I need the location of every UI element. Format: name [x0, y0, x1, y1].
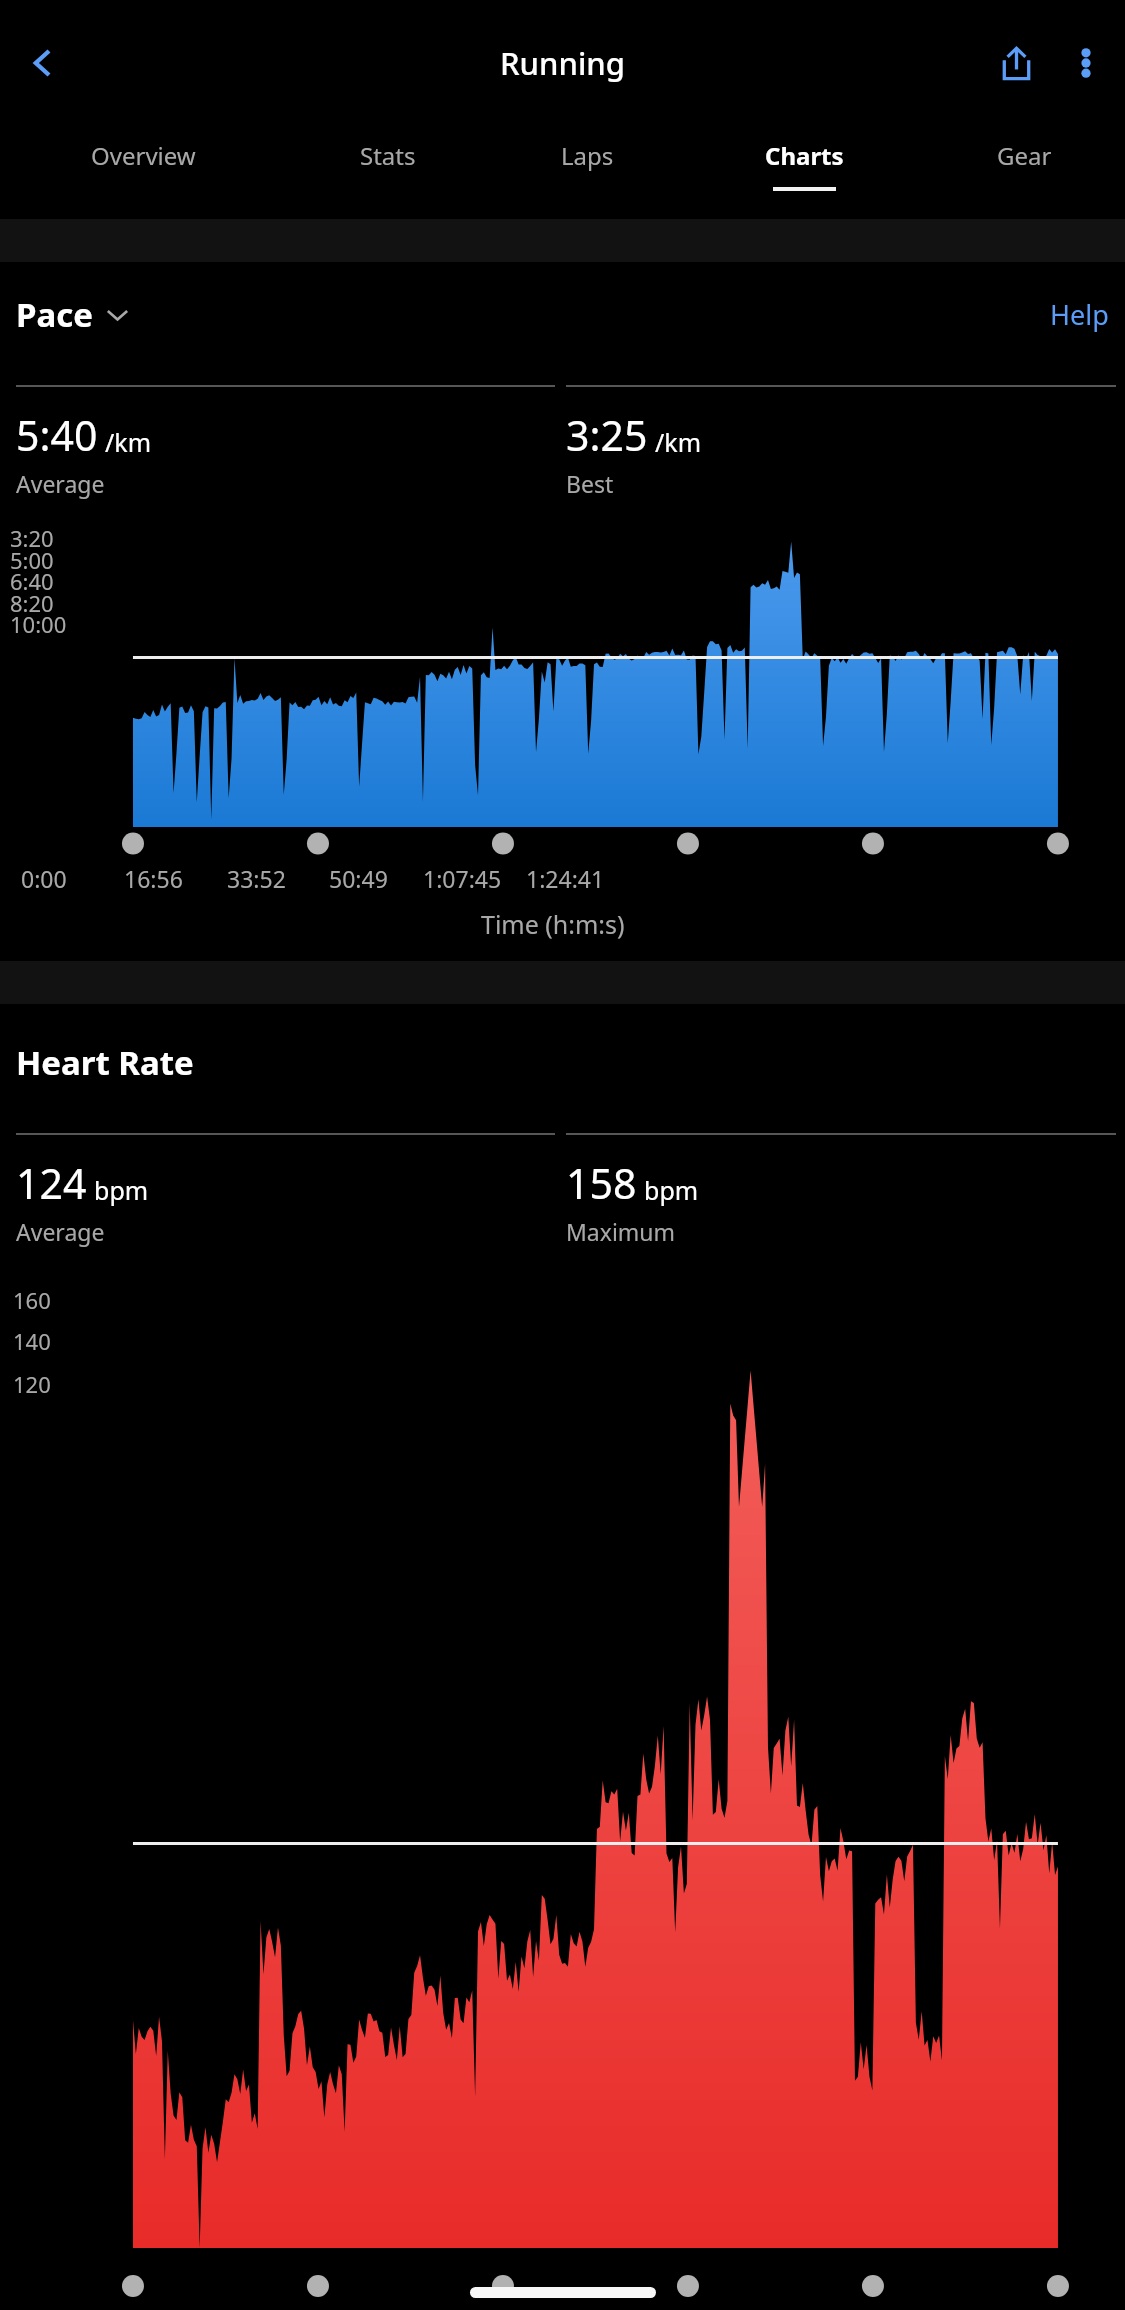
staticText: 120	[13, 1369, 51, 1399]
staticText: Average	[16, 1216, 105, 1247]
staticText: 160	[13, 1285, 51, 1315]
button[interactable]: Pace	[16, 292, 129, 337]
button[interactable]: Charts	[686, 126, 923, 219]
staticText: 1:24:41	[526, 863, 605, 894]
staticText: Overview	[91, 139, 196, 172]
staticText: Heart Rate	[16, 1040, 194, 1085]
staticText: 5:00	[10, 545, 54, 575]
staticText: 33:52	[227, 863, 286, 894]
staticText: 158	[566, 1155, 637, 1211]
staticText: 6:40	[10, 566, 54, 596]
staticText: 1:07:45	[423, 863, 502, 894]
staticText: 0:00	[21, 863, 67, 894]
button[interactable]: Overview	[0, 126, 287, 219]
staticText: 10:00	[10, 609, 67, 639]
staticText: Maximum	[566, 1216, 676, 1247]
staticText: Running	[500, 42, 625, 84]
staticText: bpm	[644, 1173, 699, 1207]
staticText: Charts	[765, 139, 844, 172]
button[interactable]: Share	[981, 28, 1051, 98]
staticText: Stats	[360, 139, 416, 172]
staticText: bpm	[94, 1173, 149, 1207]
staticText: Help	[1050, 296, 1109, 333]
staticText: /km	[105, 425, 152, 459]
staticText: Average	[16, 468, 105, 499]
staticText: Pace	[16, 292, 93, 337]
button[interactable]: Gear	[923, 126, 1125, 219]
staticText: Laps	[561, 139, 614, 172]
staticText: 5:40	[16, 407, 98, 463]
staticText: Gear	[997, 139, 1052, 172]
button[interactable]: Laps	[489, 126, 686, 219]
staticText: 50:49	[329, 863, 388, 894]
staticText: Best	[566, 468, 614, 499]
button[interactable]: Stats	[287, 126, 489, 219]
staticText: 16:56	[124, 863, 183, 894]
staticText: 124	[16, 1155, 87, 1211]
staticText: 3:20	[10, 523, 54, 553]
staticText: 140	[13, 1326, 51, 1356]
staticText: 3:25	[566, 407, 648, 463]
staticText: 8:20	[10, 588, 54, 618]
button[interactable]: Help	[1050, 296, 1109, 333]
button[interactable]: More options	[1051, 28, 1121, 98]
button[interactable]: Back	[12, 32, 74, 94]
staticText: Time (h:m:s)	[481, 907, 625, 941]
staticText: /km	[655, 425, 702, 459]
